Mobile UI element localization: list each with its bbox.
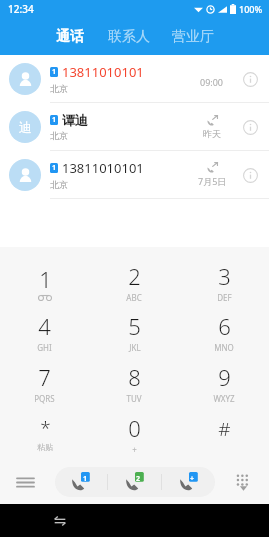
button[interactable]: 5 bbox=[89, 307, 179, 357]
button[interactable]: 0 bbox=[89, 408, 179, 459]
staticText: 12:34 bbox=[8, 2, 34, 16]
staticText: 6 bbox=[218, 311, 231, 341]
staticText: 13811010101 bbox=[62, 159, 144, 177]
staticText: 北京 bbox=[50, 179, 68, 190]
staticText: PQRS bbox=[34, 393, 55, 404]
staticText: 北京 bbox=[50, 83, 68, 94]
staticText: 4 bbox=[38, 311, 51, 341]
staticText: DEF bbox=[217, 292, 232, 303]
button[interactable]: Call details bbox=[237, 114, 263, 140]
button[interactable]: 1 bbox=[0, 55, 269, 102]
staticText: * bbox=[40, 415, 51, 441]
button[interactable]: 通话 bbox=[53, 24, 87, 50]
staticText: ABC bbox=[126, 292, 142, 303]
button[interactable]: 1 bbox=[0, 257, 89, 307]
button[interactable]: Call with SIM 2 bbox=[108, 467, 161, 497]
button[interactable]: 联系人 bbox=[105, 24, 153, 50]
staticText: 1 bbox=[39, 264, 52, 294]
staticText: GHI bbox=[37, 342, 52, 353]
button[interactable]: 6 bbox=[179, 307, 269, 357]
staticText: 迪 bbox=[19, 119, 32, 135]
button[interactable]: Call details bbox=[237, 162, 263, 188]
button[interactable]: Hide dialpad bbox=[229, 468, 257, 496]
staticText: 3 bbox=[218, 261, 231, 291]
button[interactable]: 1 bbox=[0, 151, 269, 198]
staticText: 联系人 bbox=[108, 28, 150, 46]
staticText: 粘贴 bbox=[37, 442, 53, 452]
staticText: + bbox=[132, 444, 137, 455]
staticText: 谭迪 bbox=[62, 112, 88, 128]
staticText: TUV bbox=[126, 393, 142, 404]
button[interactable]: Back bbox=[47, 508, 73, 534]
staticText: 昨天 bbox=[203, 128, 221, 139]
staticText: 0 bbox=[128, 413, 141, 443]
staticText: 1 bbox=[83, 474, 88, 483]
staticText: WXYZ bbox=[213, 393, 235, 404]
staticText: 1 bbox=[52, 67, 57, 77]
staticText: + bbox=[190, 474, 195, 483]
button[interactable]: 迪 bbox=[0, 103, 269, 150]
staticText: 通话 bbox=[56, 28, 84, 46]
staticText: 北京 bbox=[50, 130, 68, 141]
staticText: 营业厅 bbox=[172, 28, 214, 46]
staticText: 2 bbox=[128, 261, 141, 291]
button[interactable]: 2 bbox=[89, 257, 179, 307]
staticText: 100% bbox=[239, 3, 263, 15]
button[interactable]: * bbox=[0, 408, 89, 459]
button[interactable]: Menu bbox=[12, 469, 38, 495]
button[interactable]: Call with SIM 1 bbox=[55, 467, 107, 497]
button[interactable]: Call details bbox=[237, 66, 263, 92]
staticText: 1 bbox=[52, 115, 57, 125]
button[interactable]: 3 bbox=[179, 257, 269, 307]
staticText: 9 bbox=[218, 362, 231, 392]
button[interactable]: # bbox=[179, 408, 269, 459]
staticText: 7 bbox=[38, 362, 51, 392]
staticText: JKL bbox=[129, 342, 141, 353]
staticText: 7月5日 bbox=[198, 175, 227, 187]
staticText: 09:00 bbox=[200, 76, 224, 88]
button[interactable]: 4 bbox=[0, 307, 89, 357]
staticText: 5 bbox=[128, 311, 141, 341]
button[interactable]: 营业厅 bbox=[169, 24, 217, 50]
button[interactable]: 7 bbox=[0, 357, 89, 408]
staticText: 8 bbox=[128, 362, 141, 392]
staticText: 2 bbox=[136, 474, 141, 483]
button[interactable]: 9 bbox=[179, 357, 269, 408]
staticText: 1 bbox=[52, 163, 57, 173]
staticText: # bbox=[218, 416, 231, 442]
staticText: 13811010101 bbox=[62, 63, 144, 81]
staticText: MNO bbox=[214, 342, 234, 353]
button[interactable]: Add call bbox=[162, 467, 215, 497]
button[interactable]: 8 bbox=[89, 357, 179, 408]
